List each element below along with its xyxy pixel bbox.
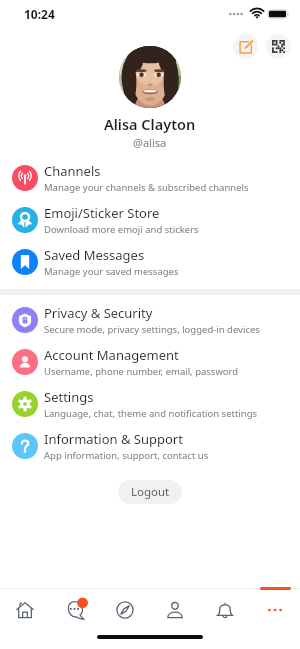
button[interactable]: Logout bbox=[118, 480, 182, 504]
staticText: Manage your channels & subscribed channe… bbox=[44, 181, 249, 194]
button[interactable]: Discover bbox=[100, 589, 150, 631]
staticText: Account Management bbox=[44, 346, 179, 364]
staticText: Language, chat, theme and notification s… bbox=[44, 407, 258, 420]
button[interactable]: Edit bbox=[233, 34, 258, 59]
staticText: Alisa Clayton bbox=[104, 114, 196, 134]
staticText: Emoji/Sticker Store bbox=[44, 204, 160, 222]
button[interactable]: Saved Messages bbox=[0, 241, 300, 283]
staticText: 10:24 bbox=[24, 6, 55, 22]
button[interactable]: Notifications bbox=[200, 589, 250, 631]
staticText: Channels bbox=[44, 162, 101, 180]
button[interactable]: QR code bbox=[266, 34, 291, 59]
staticText: Logout bbox=[131, 484, 170, 500]
button[interactable]: Chats bbox=[50, 589, 100, 631]
staticText: Secure mode, privacy settings, logged-in… bbox=[44, 323, 260, 336]
staticText: Saved Messages bbox=[44, 246, 145, 264]
button[interactable]: Information & Support bbox=[0, 425, 300, 467]
button[interactable]: Settings bbox=[0, 383, 300, 425]
staticText: Username, phone number, email, password bbox=[44, 365, 239, 378]
button[interactable]: Home bbox=[0, 589, 50, 631]
staticText: App information, support, contact us bbox=[44, 449, 209, 462]
staticText: @alisa bbox=[133, 135, 167, 150]
staticText: Settings bbox=[44, 388, 94, 406]
button[interactable]: Contacts bbox=[150, 589, 200, 631]
button[interactable]: Channels bbox=[0, 157, 300, 199]
button[interactable]: More bbox=[250, 589, 300, 631]
staticText: Information & Support bbox=[44, 430, 183, 448]
staticText: Download more emoji and stickers bbox=[44, 223, 199, 236]
staticText: Manage your saved messages bbox=[44, 265, 179, 278]
button[interactable]: Emoji/Sticker Store bbox=[0, 199, 300, 241]
staticText: Privacy & Security bbox=[44, 304, 153, 322]
button[interactable]: Privacy & Security bbox=[0, 299, 300, 341]
button[interactable]: Account Management bbox=[0, 341, 300, 383]
